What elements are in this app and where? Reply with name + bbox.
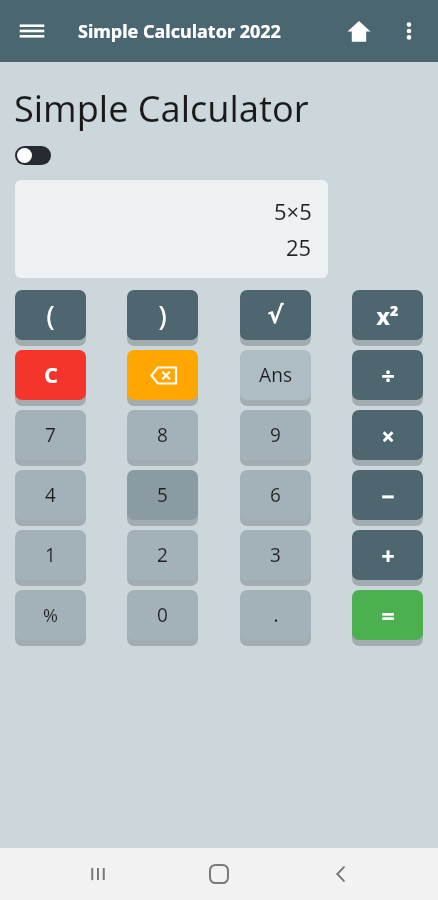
staticText: Simple Calculator 2022	[78, 19, 281, 44]
button[interactable]: Menu	[10, 9, 54, 53]
button[interactable]: 6	[240, 470, 311, 523]
staticText: √	[267, 301, 284, 329]
staticText: +	[381, 540, 395, 571]
staticText: %	[43, 603, 58, 628]
staticText: .	[273, 602, 279, 628]
staticText: 6	[270, 482, 281, 508]
button[interactable]: 4	[15, 470, 86, 523]
staticText: =	[381, 600, 395, 631]
button[interactable]: 9	[240, 410, 311, 463]
button[interactable]: Recents	[74, 850, 122, 898]
staticText: 5×5	[274, 196, 312, 226]
staticText: 2	[157, 542, 168, 568]
staticText: 8	[157, 422, 168, 448]
button[interactable]: ÷	[352, 350, 423, 403]
button[interactable]: 1	[15, 530, 86, 583]
button[interactable]: Back	[317, 850, 365, 898]
staticText: 0	[157, 602, 168, 628]
button[interactable]: )	[127, 290, 198, 343]
button[interactable]: Home	[338, 10, 380, 52]
staticText: 4	[45, 482, 56, 508]
button[interactable]: −	[352, 470, 423, 523]
staticText: 9	[270, 422, 281, 448]
button[interactable]: Ans	[240, 350, 311, 403]
button[interactable]: ×	[352, 410, 423, 463]
staticText: 7	[45, 422, 56, 448]
button[interactable]: =	[352, 590, 423, 643]
button[interactable]: 7	[15, 410, 86, 463]
button[interactable]: (	[15, 290, 86, 343]
button[interactable]: √	[240, 290, 311, 343]
button[interactable]: Home	[195, 850, 243, 898]
staticText: ×	[381, 420, 395, 451]
button[interactable]: More options	[388, 10, 430, 52]
staticText: 1	[45, 542, 56, 568]
staticText: 5	[157, 482, 168, 508]
button[interactable]: 0	[127, 590, 198, 643]
button[interactable]: Toggle	[15, 143, 57, 167]
staticText: x²	[376, 300, 399, 331]
staticText: −	[381, 480, 395, 511]
button[interactable]: Backspace	[127, 350, 198, 403]
button[interactable]: 3	[240, 530, 311, 583]
button[interactable]: .	[240, 590, 311, 643]
staticText: 25	[286, 232, 312, 262]
button[interactable]: x²	[352, 290, 423, 343]
staticText: Ans	[259, 362, 292, 388]
staticText: ÷	[381, 359, 395, 392]
staticText: 3	[270, 542, 281, 568]
button[interactable]: %	[15, 590, 86, 643]
button[interactable]: 5	[127, 470, 198, 523]
button[interactable]: +	[352, 530, 423, 583]
button[interactable]: 2	[127, 530, 198, 583]
staticText: )	[158, 297, 167, 334]
button[interactable]: 8	[127, 410, 198, 463]
staticText: Simple Calculator	[14, 84, 309, 133]
staticText: C	[44, 361, 58, 390]
button[interactable]: C	[15, 350, 86, 403]
staticText: (	[46, 297, 55, 334]
